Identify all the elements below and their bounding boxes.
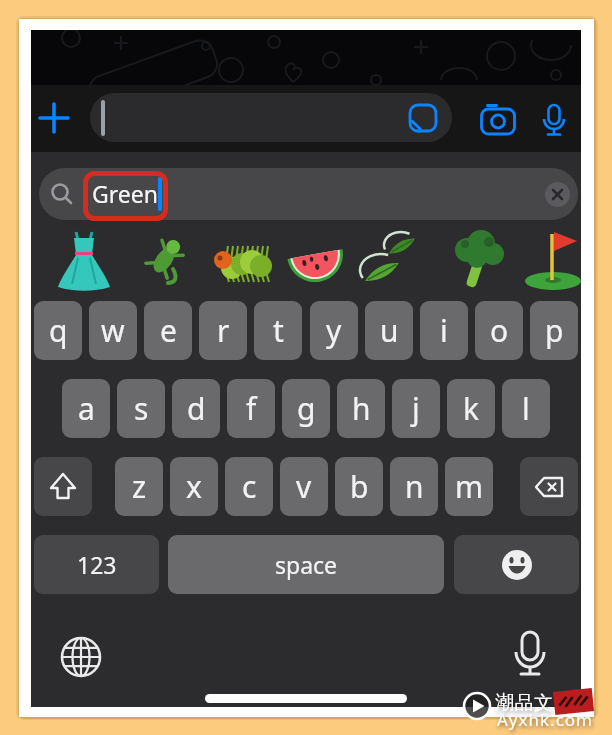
staticText: 123	[77, 549, 117, 580]
button[interactable]	[508, 629, 552, 681]
button[interactable]: h	[337, 379, 385, 438]
button[interactable]	[521, 228, 581, 292]
button[interactable]	[52, 228, 116, 292]
button[interactable]: q	[34, 301, 82, 360]
staticText: d	[187, 388, 206, 429]
button[interactable]: 123	[34, 535, 159, 594]
button[interactable]	[545, 182, 570, 207]
button[interactable]: v	[280, 457, 328, 516]
button[interactable]: s	[117, 379, 165, 438]
staticText: s	[134, 388, 149, 429]
button[interactable]: k	[447, 379, 495, 438]
button[interactable]: a	[62, 379, 110, 438]
button[interactable]: f	[227, 379, 275, 438]
staticText: l	[522, 388, 530, 429]
staticText: e	[160, 310, 177, 351]
staticText: h	[352, 388, 371, 429]
button[interactable]: n	[390, 457, 438, 516]
button[interactable]	[447, 228, 511, 292]
button[interactable]: m	[445, 457, 493, 516]
staticText: b	[350, 466, 369, 507]
button[interactable]	[40, 104, 68, 132]
button[interactable]: o	[475, 301, 523, 360]
staticText: k	[463, 388, 480, 429]
button[interactable]	[358, 228, 422, 292]
staticText: space	[275, 549, 338, 580]
button[interactable]: y	[310, 301, 358, 360]
staticText: y	[326, 310, 342, 351]
button[interactable]	[539, 102, 569, 138]
button[interactable]	[409, 104, 437, 132]
staticText: c	[242, 466, 257, 507]
staticText: g	[297, 388, 316, 429]
button[interactable]	[520, 457, 578, 516]
staticText: x	[186, 466, 202, 507]
button[interactable]: d	[172, 379, 220, 438]
staticText: t	[273, 310, 284, 351]
button[interactable]: p	[530, 301, 578, 360]
button[interactable]: Green	[39, 168, 578, 220]
button[interactable]	[479, 105, 517, 135]
staticText: j	[412, 388, 420, 429]
button[interactable]: e	[144, 301, 192, 360]
button[interactable]: j	[392, 379, 440, 438]
staticText: r	[217, 310, 230, 351]
button[interactable]	[34, 457, 92, 516]
staticText: v	[296, 466, 312, 507]
button[interactable]: t	[254, 301, 302, 360]
button[interactable]: l	[502, 379, 550, 438]
button[interactable]: space	[168, 535, 444, 594]
button[interactable]	[284, 228, 348, 292]
staticText: n	[405, 466, 424, 507]
staticText: Green	[92, 178, 158, 209]
button[interactable]: u	[365, 301, 413, 360]
button[interactable]: b	[335, 457, 383, 516]
button[interactable]	[59, 635, 103, 679]
button[interactable]	[132, 228, 196, 292]
button[interactable]: c	[225, 457, 273, 516]
staticText: Ayxhk.com	[497, 708, 594, 731]
staticText: z	[132, 466, 147, 507]
staticText: i	[440, 310, 448, 351]
button[interactable]: z	[115, 457, 163, 516]
staticText: q	[49, 310, 68, 351]
button[interactable]	[90, 93, 452, 142]
staticText: 潮品文	[495, 691, 554, 715]
button[interactable]: x	[170, 457, 218, 516]
button[interactable]: r	[199, 301, 247, 360]
staticText: m	[455, 466, 484, 507]
button[interactable]	[454, 535, 579, 594]
staticText: w	[101, 310, 125, 351]
button[interactable]: i	[420, 301, 468, 360]
staticText: o	[490, 310, 509, 351]
button[interactable]: g	[282, 379, 330, 438]
staticText: p	[545, 310, 564, 351]
staticText: u	[380, 310, 399, 351]
button[interactable]: w	[89, 301, 137, 360]
staticText: f	[246, 388, 257, 429]
button[interactable]	[208, 228, 272, 292]
staticText: a	[78, 388, 95, 429]
